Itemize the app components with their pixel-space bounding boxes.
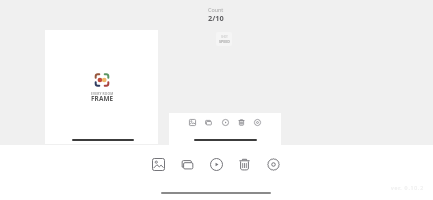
button[interactable]: Save image [187,117,198,128]
staticText: SPEED [219,39,230,44]
button[interactable]: Delete [236,117,247,128]
button[interactable]: SHOT [216,32,232,46]
staticText: SHOT [221,35,228,39]
staticText: ver. 0.10.2 [391,184,425,191]
staticText: Count [208,6,224,13]
staticText: 2/10 [208,13,224,23]
button[interactable]: Record [220,117,231,128]
button[interactable]: Settings [252,117,263,128]
button[interactable]: Delete [234,154,254,174]
button[interactable]: Save image [148,154,168,174]
button[interactable]: Folder [177,154,197,174]
button[interactable]: Folder [203,117,214,128]
button[interactable]: Settings [263,154,283,174]
staticText: FRAME [91,94,114,103]
staticText: EVERY ROOM [91,92,114,96]
button[interactable]: Record [206,154,226,174]
